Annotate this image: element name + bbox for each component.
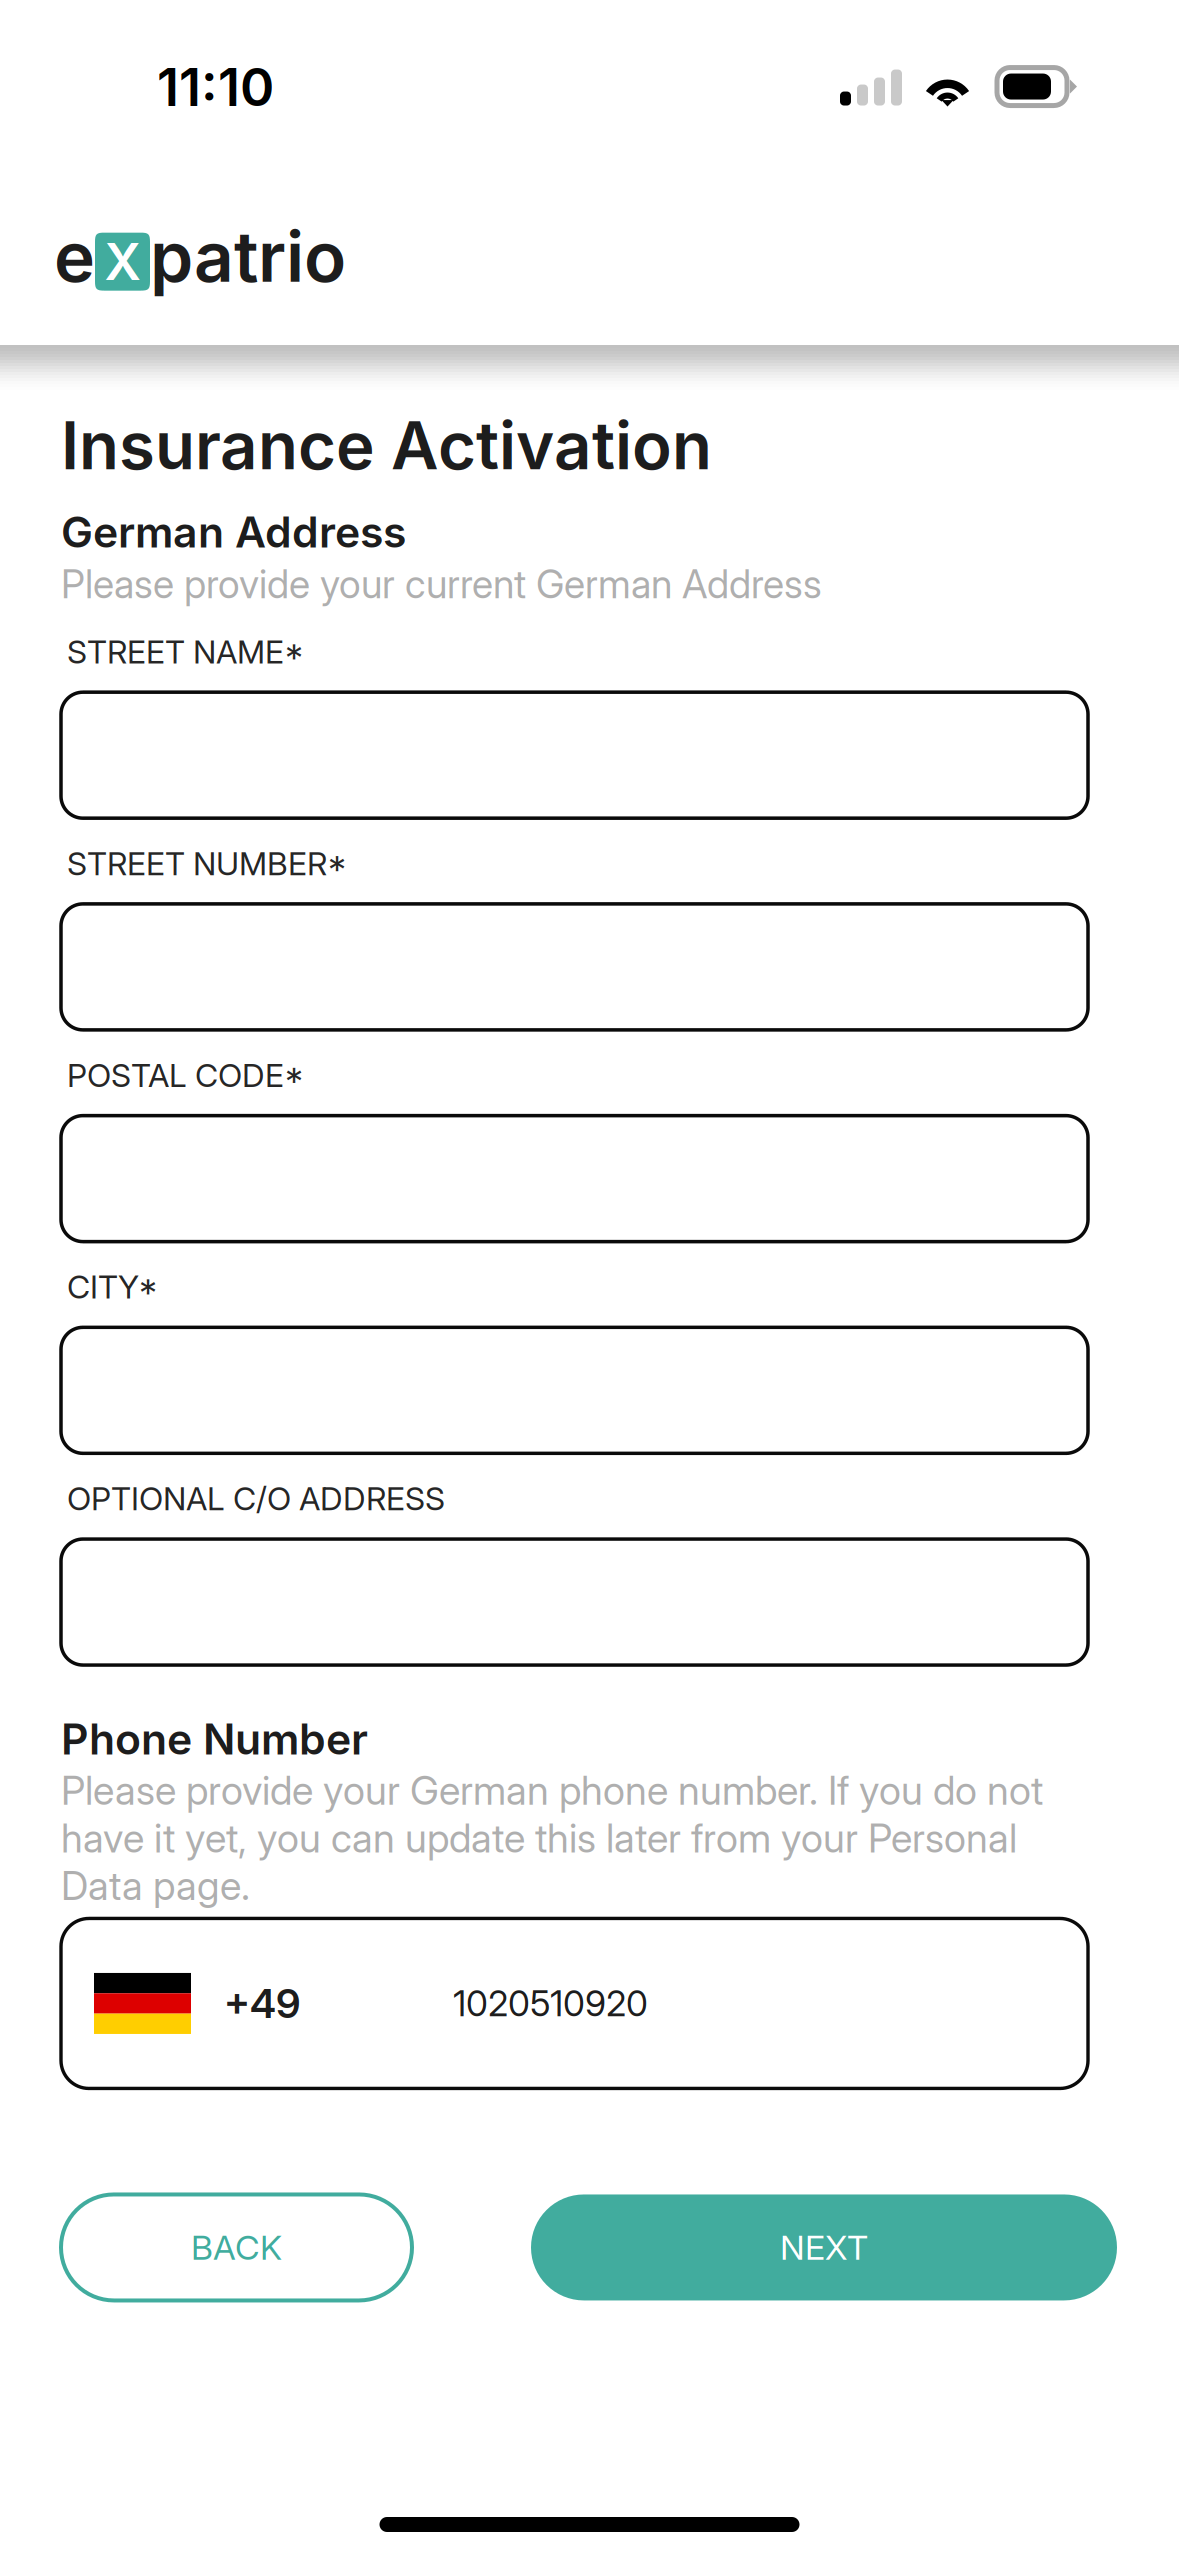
- staticText: patrio: [150, 215, 346, 298]
- staticText: POSTAL CODE*: [67, 1056, 304, 1095]
- button[interactable]: BACK: [61, 2194, 412, 2300]
- staticText: OPTIONAL C/O ADDRESS: [67, 1479, 445, 1518]
- staticText: BACK: [191, 2227, 282, 2268]
- staticText: 1020510920: [453, 1982, 648, 2025]
- staticText: Please provide your current German Addre…: [61, 561, 822, 607]
- staticText: X: [104, 231, 140, 292]
- staticText: NEXT: [780, 2227, 868, 2268]
- staticText: +49: [224, 1979, 300, 2028]
- staticText: Insurance Activation: [61, 406, 712, 485]
- button[interactable]: NEXT: [531, 2194, 1117, 2300]
- staticText: e: [54, 215, 95, 298]
- staticText: 11:10: [157, 55, 274, 118]
- staticText: German Address: [61, 506, 406, 558]
- staticText: STREET NAME*: [67, 632, 304, 671]
- staticText: Phone Number: [61, 1713, 368, 1765]
- staticText: Please provide your German phone number.…: [61, 1767, 1043, 1909]
- staticText: STREET NUMBER*: [67, 844, 347, 883]
- staticText: CITY*: [67, 1268, 158, 1306]
